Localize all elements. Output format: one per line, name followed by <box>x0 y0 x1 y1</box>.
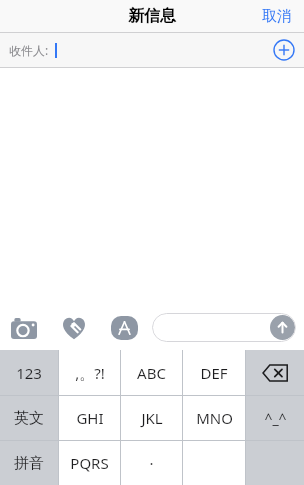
staticText: JKL <box>141 408 163 428</box>
staticText: 收件人: <box>9 42 49 58</box>
staticText: PQRS <box>70 453 109 473</box>
button[interactable]: ABC <box>121 350 182 395</box>
staticText: · <box>149 453 154 473</box>
button[interactable]: 英文 <box>0 396 58 440</box>
button[interactable]: Digital Touch <box>58 312 90 344</box>
button[interactable]: ,。?! <box>59 350 120 395</box>
button[interactable]: 拼音 <box>0 441 58 485</box>
button[interactable]: GHI <box>59 396 120 440</box>
staticText: 新信息 <box>128 6 176 26</box>
button[interactable]: ^_^ <box>246 396 304 440</box>
button[interactable]: 取消 <box>250 3 304 30</box>
staticText: 123 <box>16 363 42 383</box>
button[interactable]: DEF <box>183 350 245 395</box>
staticText: MNO <box>196 408 233 428</box>
button[interactable]: · <box>121 441 182 485</box>
button[interactable]: PQRS <box>59 441 120 485</box>
staticText: ABC <box>137 363 166 383</box>
button[interactable]: 123 <box>0 350 58 395</box>
staticText: 拼音 <box>14 454 44 473</box>
button[interactable]: Send <box>152 313 296 342</box>
button[interactable]: Add contact <box>273 39 295 61</box>
staticText: DEF <box>200 363 228 383</box>
staticText: 英文 <box>14 409 44 428</box>
button[interactable]: Camera <box>8 312 40 344</box>
staticText: 取消 <box>262 7 292 26</box>
button[interactable]: Send <box>270 315 295 340</box>
button[interactable] <box>246 350 304 395</box>
button[interactable]: App Store <box>108 312 140 344</box>
button[interactable]: MNO <box>183 396 245 440</box>
staticText: GHI <box>76 408 104 428</box>
staticText: ^_^ <box>264 409 287 428</box>
staticText: ,。?! <box>75 363 105 383</box>
button[interactable]: JKL <box>121 396 182 440</box>
